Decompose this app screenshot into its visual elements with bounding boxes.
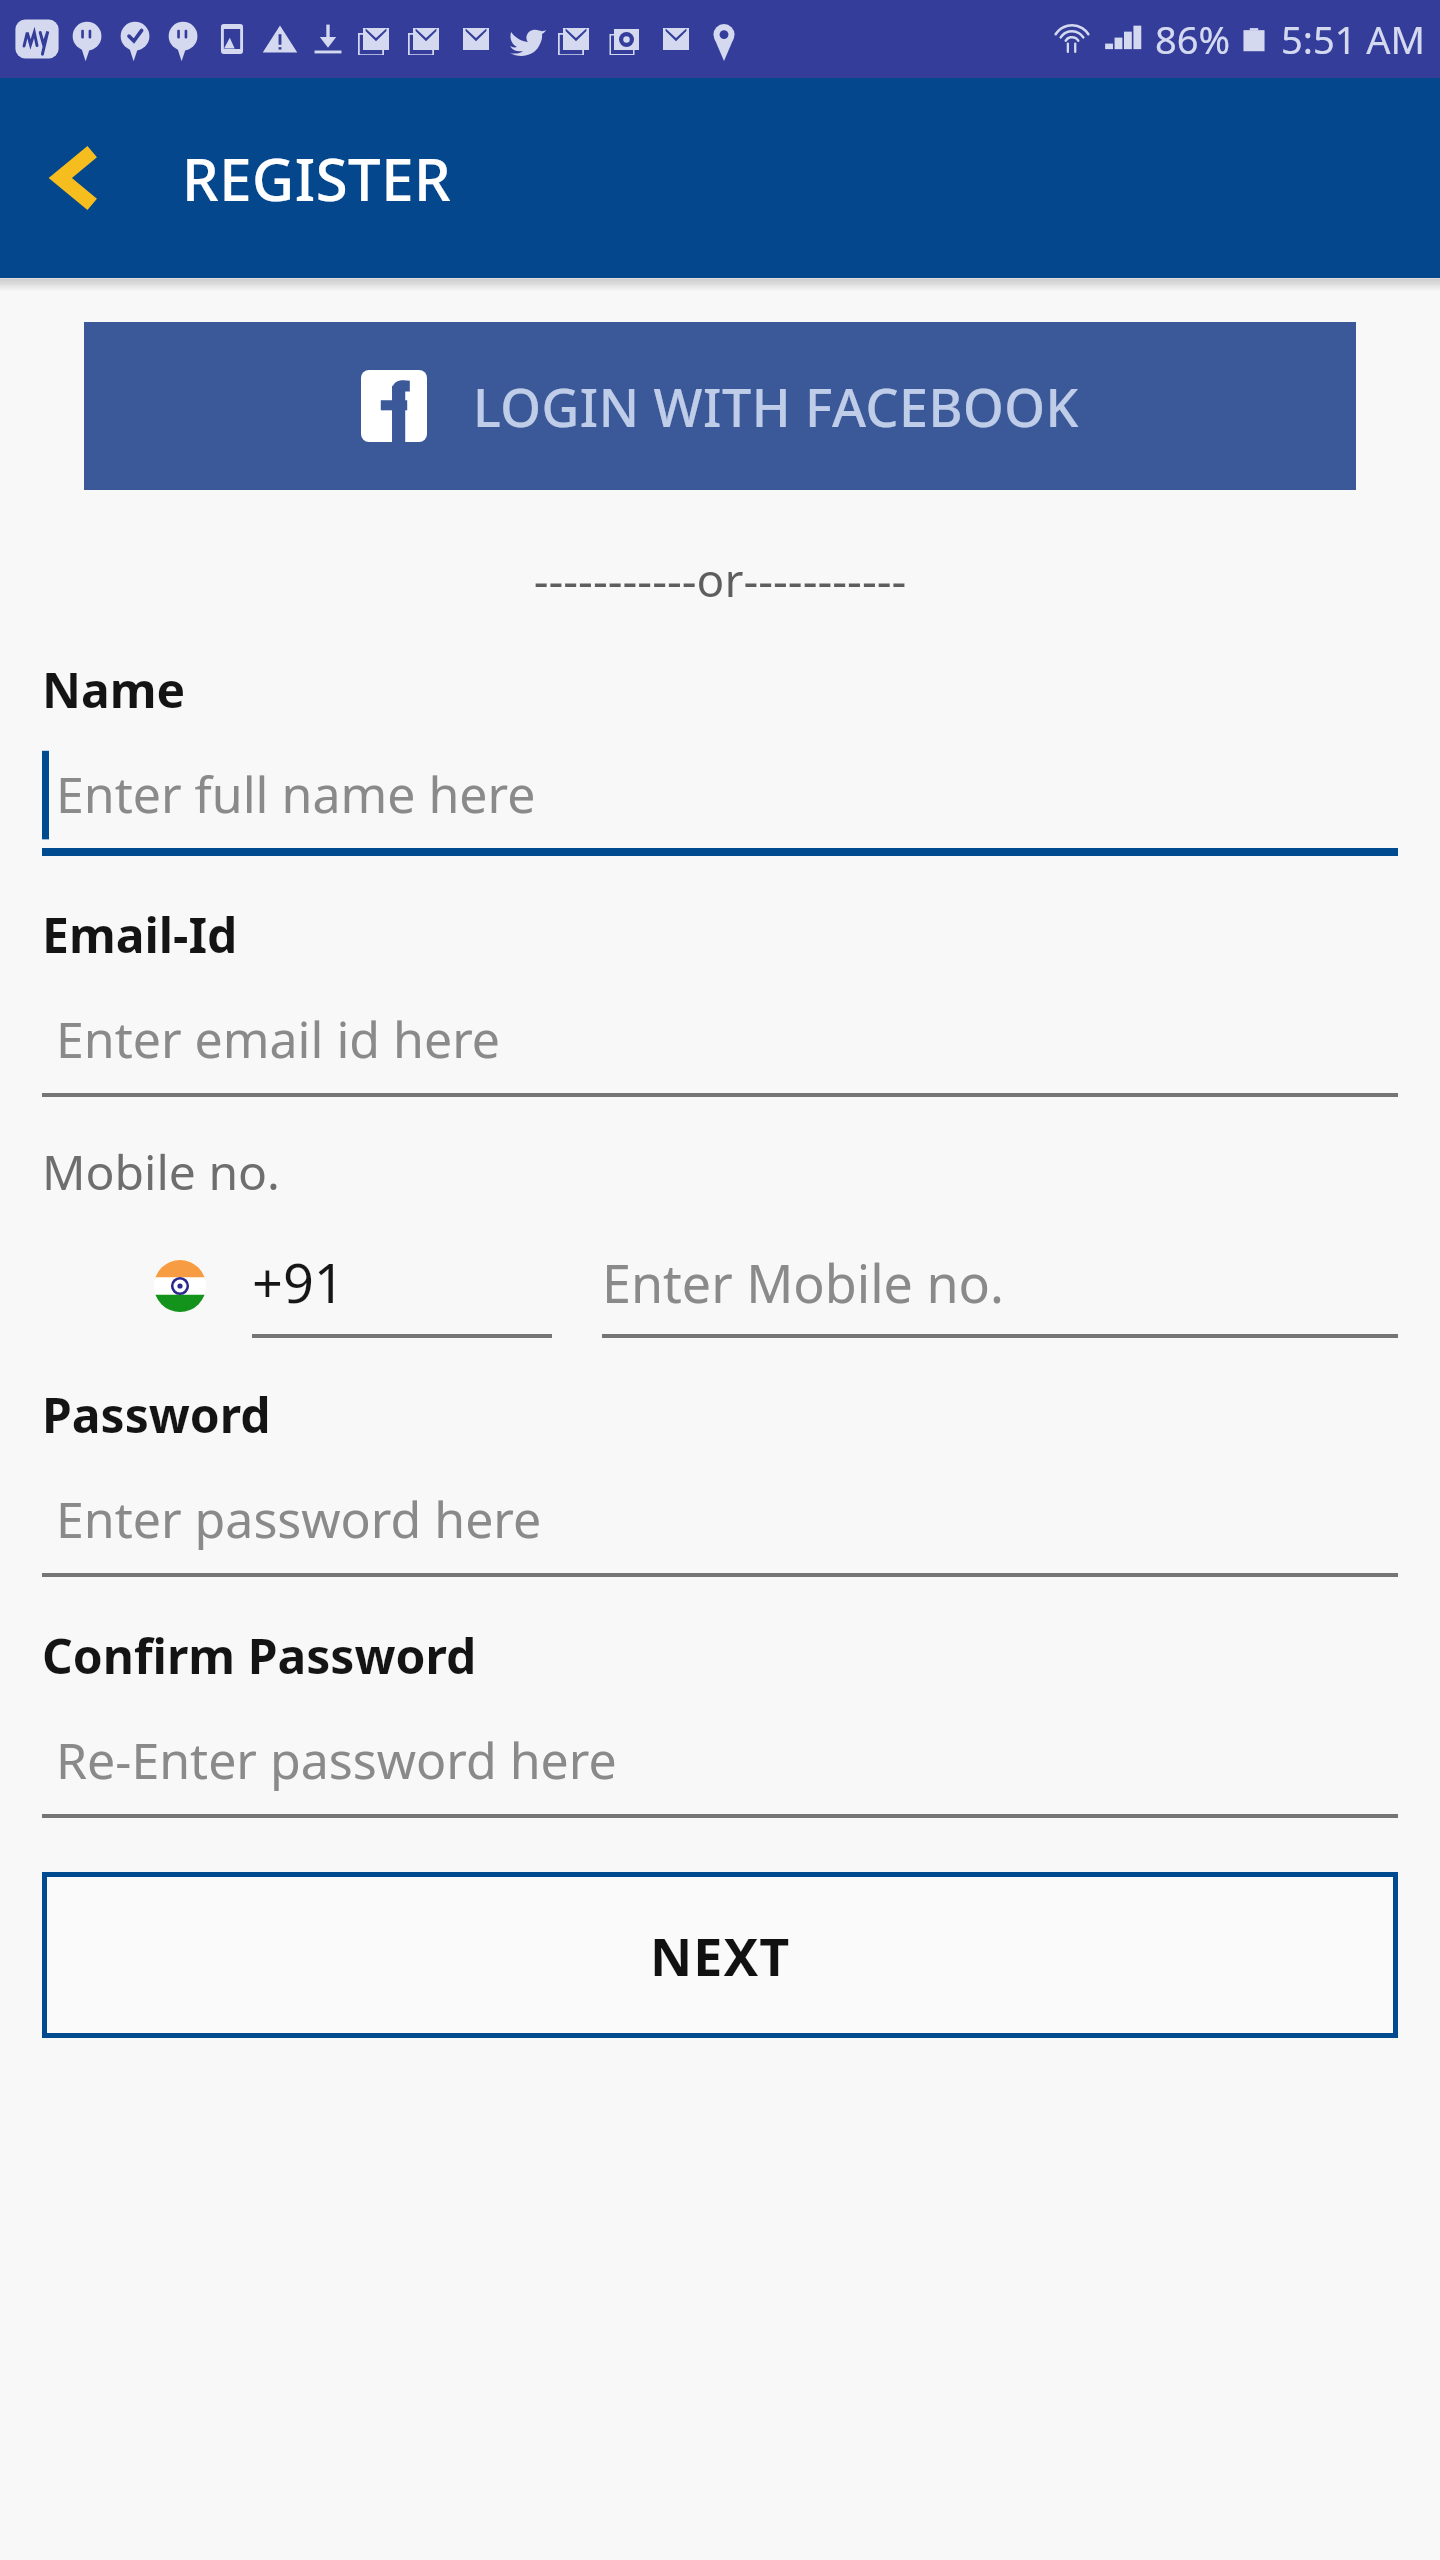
- staticText: Password: [42, 1382, 271, 1447]
- staticText: Enter full name here: [56, 760, 536, 828]
- staticText: +91: [252, 1245, 345, 1319]
- staticText: Re-Enter password here: [56, 1726, 617, 1794]
- staticText: REGISTER: [182, 139, 452, 218]
- staticText: Email-Id: [42, 902, 238, 967]
- button[interactable]: Enter email id here: [42, 985, 1398, 1093]
- staticText: Enter password here: [56, 1485, 542, 1553]
- button[interactable]: Enter password here: [42, 1465, 1398, 1573]
- button[interactable]: NEXT: [42, 1872, 1398, 2038]
- staticText: -----------or-----------: [0, 548, 1440, 611]
- button[interactable]: Enter Mobile no.: [602, 1230, 1398, 1334]
- button[interactable]: Re-Enter password here: [42, 1706, 1398, 1814]
- staticText: NEXT: [650, 1920, 791, 1991]
- staticText: 5:51 AM: [1281, 13, 1426, 65]
- button[interactable]: LOGIN WITH FACEBOOK: [84, 322, 1356, 490]
- staticText: 86%: [1155, 13, 1231, 65]
- button[interactable]: +91: [252, 1230, 552, 1334]
- staticText: Name: [42, 657, 186, 722]
- staticText: Enter email id here: [56, 1005, 500, 1073]
- button[interactable]: Back: [24, 123, 134, 233]
- button[interactable]: Enter full name here: [42, 740, 1398, 848]
- staticText: LOGIN WITH FACEBOOK: [473, 371, 1079, 442]
- staticText: Enter Mobile no.: [602, 1247, 1004, 1318]
- staticText: Confirm Password: [42, 1623, 477, 1688]
- staticText: Mobile no.: [42, 1139, 280, 1204]
